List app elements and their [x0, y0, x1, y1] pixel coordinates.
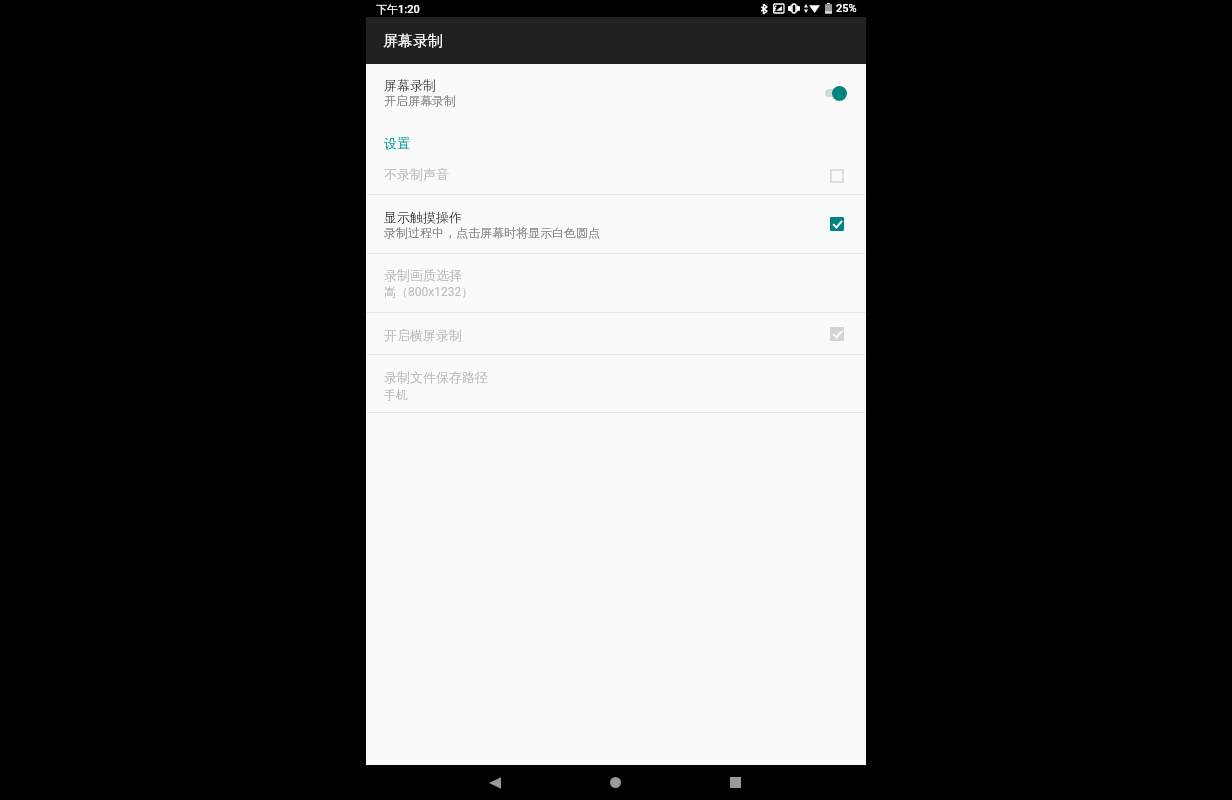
staticText: 嵩（800x1232） [384, 284, 474, 299]
staticText: 下午1:20 [376, 2, 420, 16]
button[interactable]: 开启横屏录制 [366, 313, 866, 354]
staticText: 25% [836, 2, 857, 15]
button[interactable]: Home [595, 765, 635, 800]
staticText: 屏幕录制 [383, 32, 443, 51]
button[interactable]: Toggle screen recording [823, 83, 847, 103]
button[interactable]: 录制画质选择 [366, 254, 866, 312]
staticText: 不录制声音 [384, 166, 827, 182]
button[interactable]: 不录制声音 [366, 158, 866, 194]
button[interactable]: 显示触摸操作 [366, 195, 866, 253]
button[interactable]: 屏幕录制 [366, 64, 866, 122]
staticText: 录制过程中，点击屏幕时将显示白色圆点 [384, 225, 600, 240]
button[interactable]: Show touches checkbox [827, 214, 847, 234]
staticText: 手机 [384, 387, 408, 402]
button[interactable]: Mute recording checkbox [827, 166, 847, 186]
staticText: 开启屏幕录制 [384, 93, 456, 108]
button[interactable]: 录制文件保存路径 [366, 355, 866, 412]
staticText: 录制文件保存路径 [384, 369, 488, 385]
staticText: 屏幕录制 [384, 77, 436, 93]
staticText: 开启横屏录制 [384, 327, 827, 343]
staticText: 设置 [384, 135, 410, 151]
button[interactable]: Landscape recording checkbox [827, 324, 847, 344]
button[interactable]: Back [475, 765, 515, 800]
staticText: 显示触摸操作 [384, 209, 462, 225]
button[interactable]: Recent apps [715, 765, 755, 800]
staticText: 录制画质选择 [384, 267, 462, 283]
